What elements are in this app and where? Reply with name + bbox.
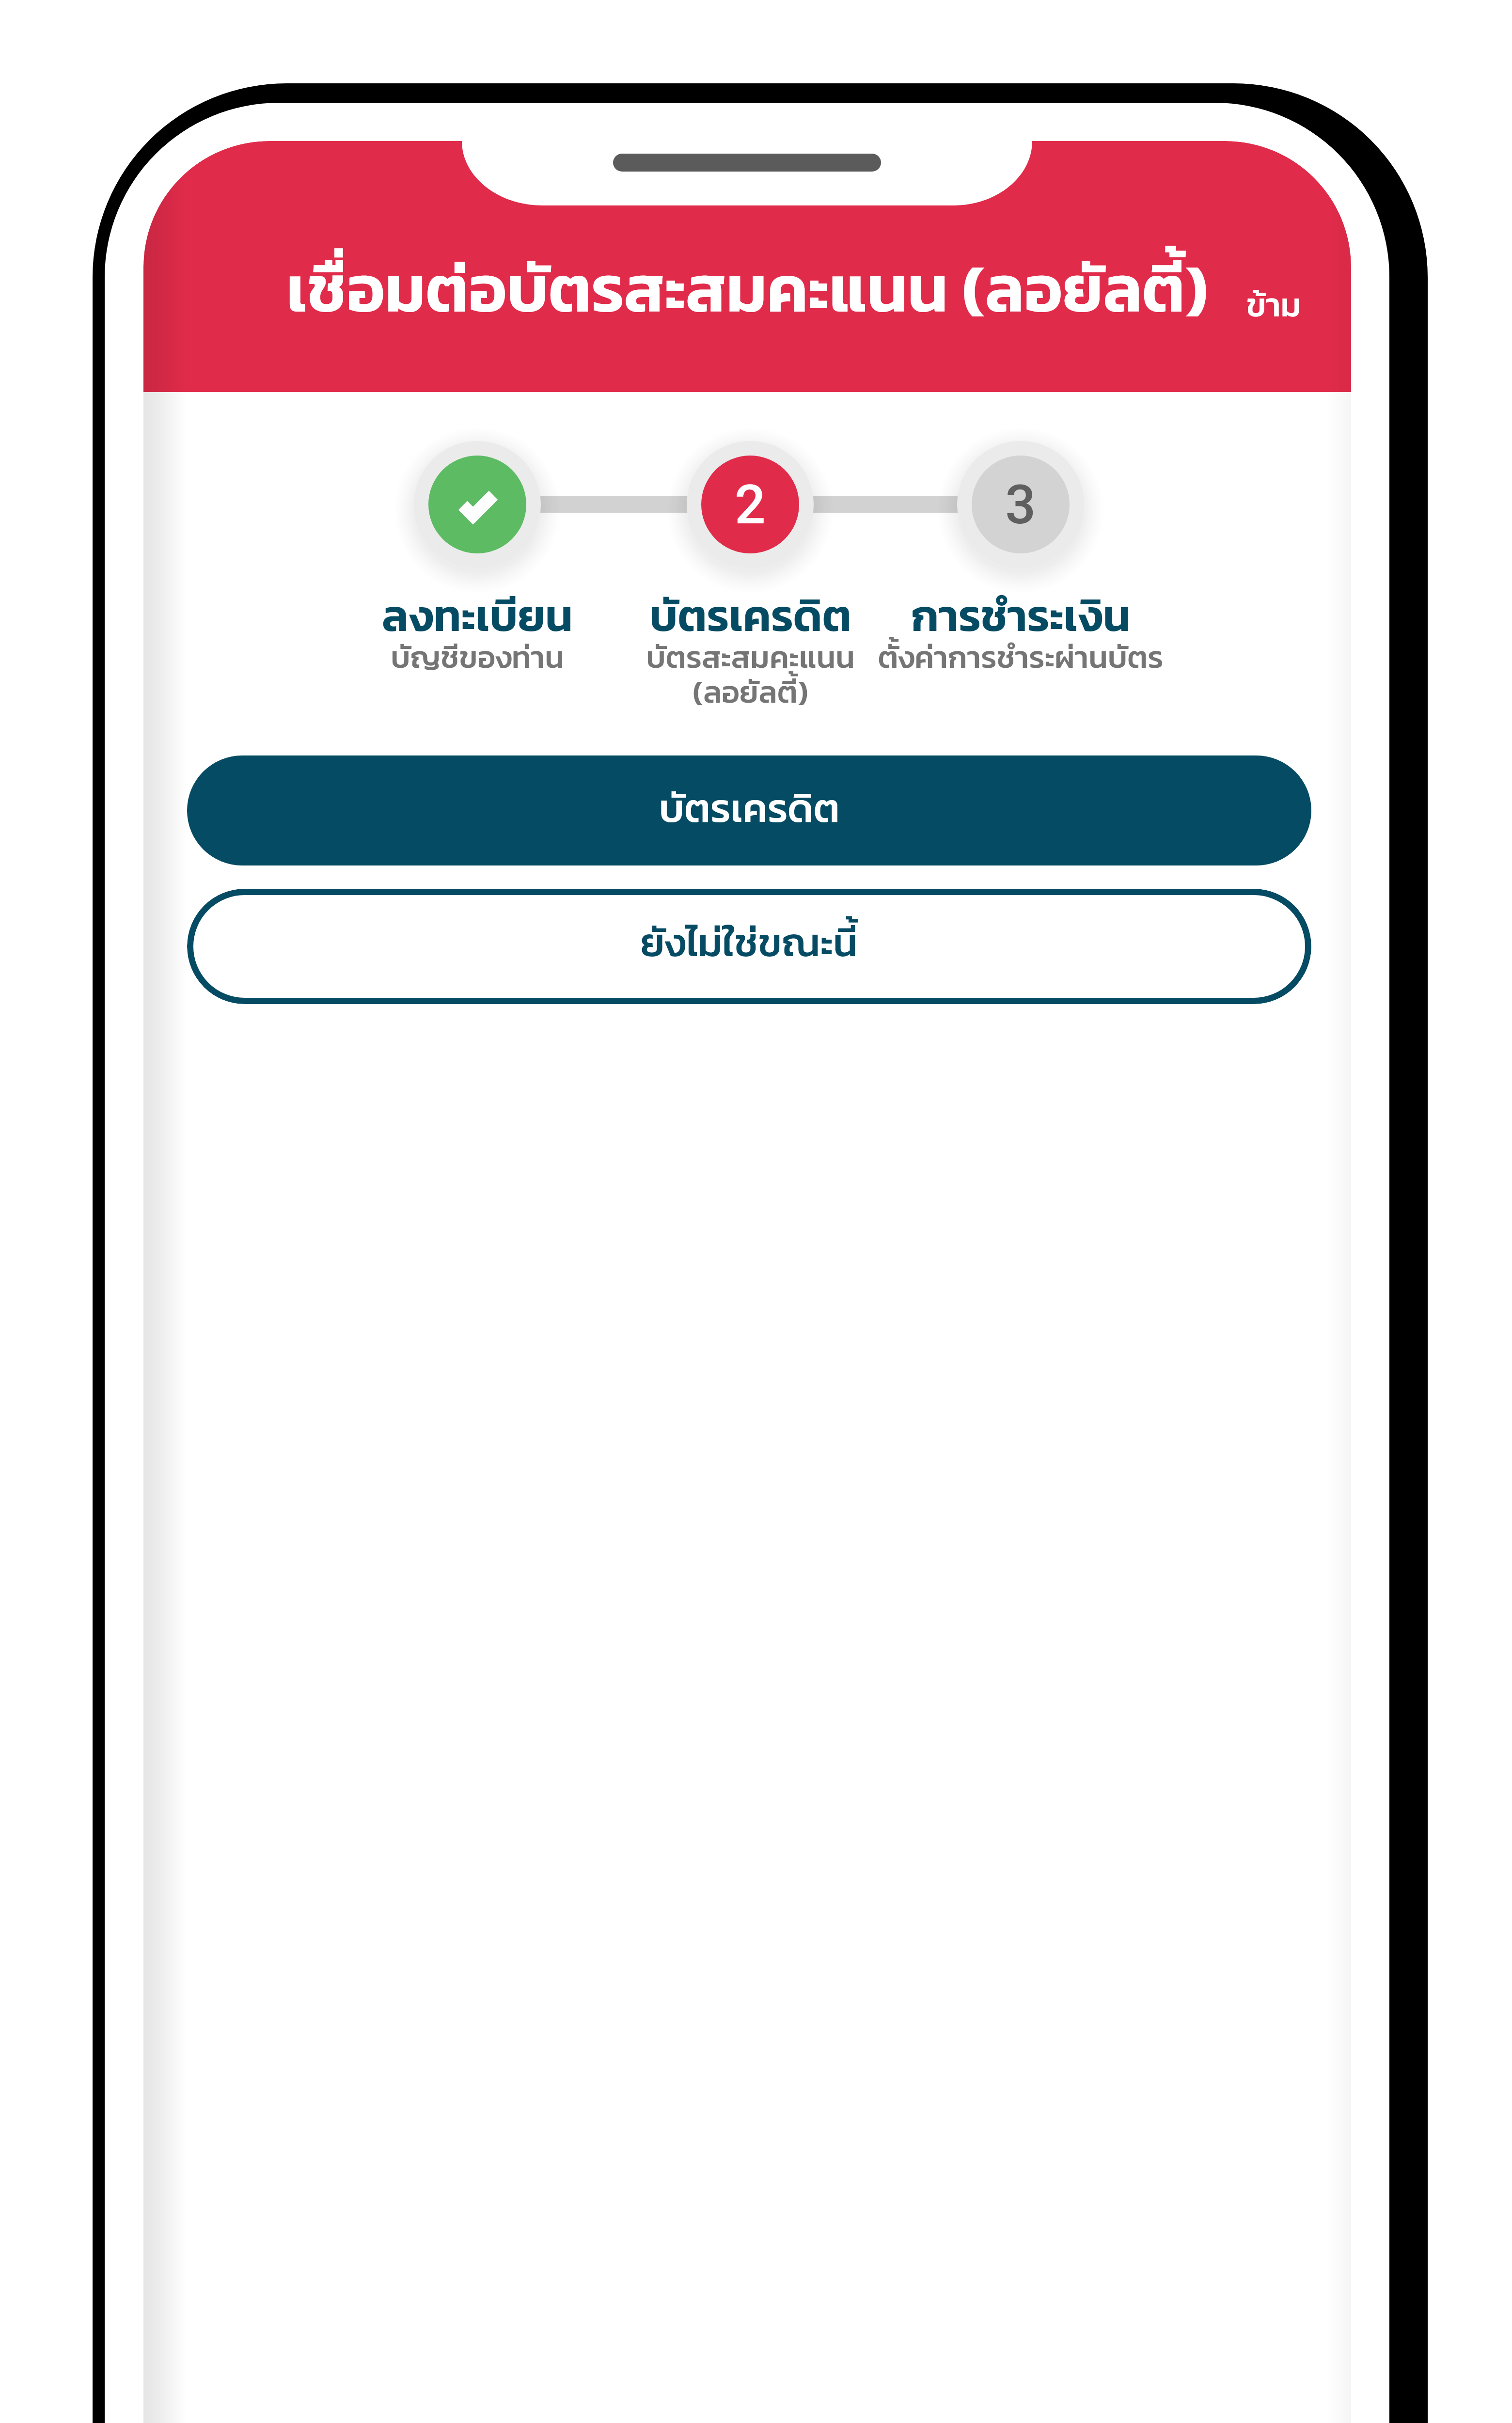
button[interactable]: บัตรเครดิต <box>187 755 1311 865</box>
staticText: ข้าม <box>1246 280 1301 330</box>
staticText: การชำระเงิน <box>911 582 1131 648</box>
staticText: 3 <box>1005 473 1036 536</box>
staticText: ยังไม่ใช่ขณะนี้ <box>641 913 858 972</box>
staticText: เชื่อมต่อบัตรสะสมคะแนน (ลอยัลตี้) <box>286 240 1208 337</box>
button[interactable]: ข้าม <box>1230 278 1317 331</box>
staticText: บัตรเครดิต <box>649 582 851 648</box>
staticText: ตั้งค่าการชำระผ่านบัตร <box>878 634 1164 680</box>
staticText: บัญชีของท่าน <box>391 634 564 680</box>
staticText: ลงทะเบียน <box>382 582 573 648</box>
staticText: บัตรสะสมคะแนน (ลอยัลตี้) <box>646 634 855 715</box>
staticText: บัตรเครดิต <box>659 778 840 838</box>
button[interactable]: ยังไม่ใช่ขณะนี้ <box>187 889 1311 1004</box>
staticText: 2 <box>735 473 766 536</box>
